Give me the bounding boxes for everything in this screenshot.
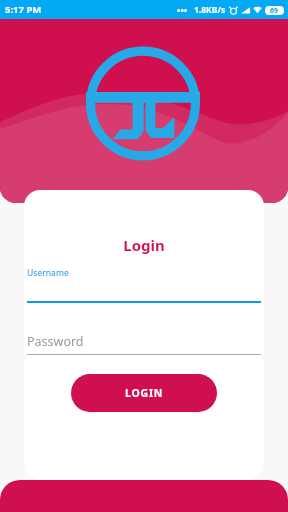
staticText: Username <box>27 267 69 279</box>
staticText: Login <box>24 235 264 255</box>
button[interactable]: LOGIN <box>71 374 217 412</box>
staticText: 1.8KB/s <box>194 4 226 16</box>
staticText: ••• <box>177 4 188 16</box>
staticText: Password <box>27 333 84 350</box>
staticText: 69 <box>270 6 279 15</box>
staticText: LOGIN <box>125 386 164 400</box>
staticText: 5:17 PM <box>5 3 42 16</box>
